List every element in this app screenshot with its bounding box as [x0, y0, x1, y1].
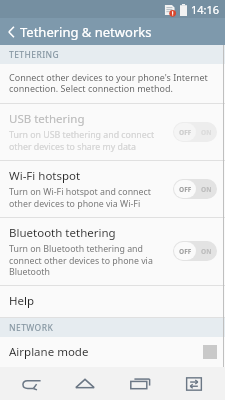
staticText: Connect other devices to your phone's In…	[9, 71, 208, 95]
button[interactable]: Bluetooth tethering	[0, 218, 225, 285]
button[interactable]: Help	[0, 286, 225, 317]
staticText: Turn on Wi-Fi hotspot and connect other …	[9, 186, 151, 209]
staticText: OFF	[178, 185, 191, 194]
staticText: TETHERING	[9, 49, 60, 61]
staticText: Tethering & networks	[20, 23, 152, 41]
button[interactable]: Back	[0, 18, 225, 45]
button[interactable]: Toggle	[173, 179, 217, 199]
button[interactable]: Dual window	[170, 367, 218, 400]
staticText: OFF	[179, 185, 192, 194]
button[interactable]: Toggle	[173, 241, 217, 261]
staticText: OFF	[178, 128, 191, 137]
staticText: 14:16	[191, 2, 220, 17]
button[interactable]: USB tethering	[0, 104, 225, 160]
staticText: OFF	[179, 247, 192, 256]
staticText: Bluetooth tethering	[9, 225, 116, 241]
staticText: OFF	[179, 128, 192, 137]
button[interactable]: Wi-Fi hotspot	[0, 161, 225, 217]
staticText: Airplane mode	[9, 344, 89, 359]
staticText: Wi-Fi hotspot	[9, 168, 81, 184]
button[interactable]: Back	[5, 21, 17, 43]
button[interactable]: Airplane mode	[0, 337, 225, 367]
button[interactable]: Back	[7, 367, 55, 400]
button[interactable]: Recent apps	[116, 367, 164, 400]
staticText: ON	[201, 247, 212, 256]
staticText: Turn on Bluetooth tethering and connect …	[9, 243, 153, 277]
staticText: OFF	[178, 247, 191, 256]
staticText: Help	[9, 293, 35, 309]
staticText: ON	[201, 185, 212, 194]
staticText: NETWORK	[9, 322, 54, 334]
button[interactable]: Home	[61, 367, 109, 400]
button[interactable]: Toggle	[173, 122, 217, 142]
staticText: USB tethering	[9, 111, 85, 127]
staticText: Turn on USB tethering and connect other …	[9, 129, 155, 152]
staticText: ON	[201, 128, 212, 137]
